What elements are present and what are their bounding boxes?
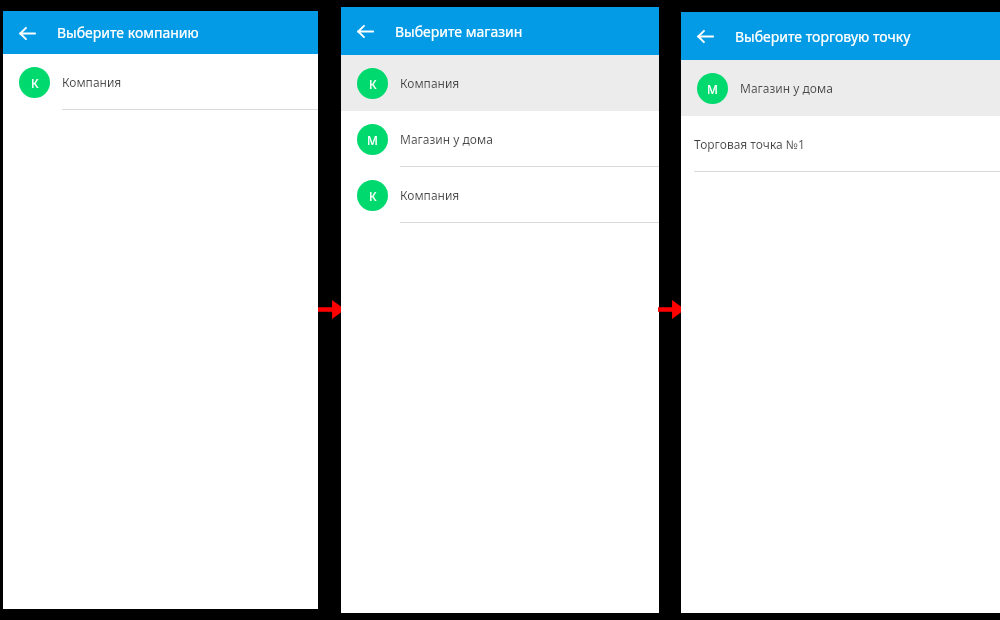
staticText: К [369,188,377,204]
staticText: М [707,81,718,97]
button[interactable]: К [341,55,659,111]
staticText: Магазин у дома [400,131,493,147]
button[interactable]: Back [11,17,43,49]
staticText: Компания [400,75,460,91]
button[interactable]: Back [349,15,381,47]
staticText: Магазин у дома [740,80,833,96]
button[interactable]: М [341,111,659,167]
staticText: Выберите магазин [395,22,523,41]
staticText: Выберите компанию [57,23,199,42]
staticText: Выберите торговую точку [735,27,911,46]
button[interactable]: К [341,167,659,223]
button[interactable]: М [681,60,1000,116]
staticText: Компания [400,187,460,203]
button[interactable]: К [3,54,318,110]
button[interactable]: Торговая точка №1 [681,116,1000,172]
staticText: К [31,75,39,91]
staticText: М [367,132,378,148]
staticText: Торговая точка №1 [694,136,805,152]
button[interactable]: Back [689,20,721,52]
staticText: Компания [62,74,122,90]
staticText: К [369,76,377,92]
